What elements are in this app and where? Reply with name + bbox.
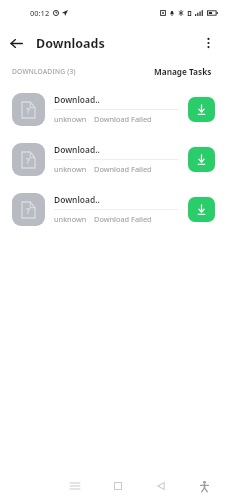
staticText: Download.. [54, 194, 100, 205]
staticText: unknown [54, 164, 87, 174]
staticText: unknown [54, 214, 87, 224]
staticText: 00:12 [30, 8, 50, 18]
staticText: Manage Tasks [154, 66, 212, 77]
staticText: ? [26, 155, 31, 167]
staticText: Download Failed [94, 164, 152, 174]
button[interactable]: ? [0, 84, 225, 134]
button[interactable]: ? [0, 184, 225, 234]
button[interactable]: Back [148, 473, 174, 499]
button[interactable]: Download [188, 97, 215, 122]
button[interactable]: Home [105, 473, 131, 499]
staticText: unknown [54, 114, 87, 124]
button[interactable]: Manage Tasks [154, 66, 212, 77]
button[interactable]: ? [0, 134, 225, 184]
staticText: Download Failed [94, 114, 152, 124]
staticText: Download.. [54, 144, 100, 155]
button[interactable]: Recents [62, 473, 88, 499]
staticText: DOWNLOADING (3) [12, 67, 76, 76]
staticText: Download Failed [94, 214, 152, 224]
button[interactable]: More options [193, 28, 223, 58]
button[interactable]: Back [0, 27, 32, 59]
button[interactable]: Accessibility [191, 473, 217, 499]
staticText: ? [26, 105, 31, 117]
button[interactable]: Download [188, 197, 215, 222]
staticText: ? [26, 205, 31, 217]
button[interactable]: Download [188, 147, 215, 172]
staticText: Downloads [36, 35, 105, 52]
staticText: Download.. [54, 94, 100, 105]
